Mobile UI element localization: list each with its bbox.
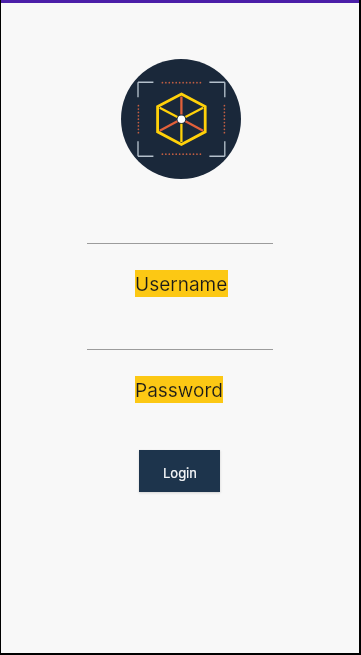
button[interactable]: Password — [135, 376, 223, 403]
staticText: Login — [163, 465, 197, 481]
button[interactable]: Username — [135, 270, 228, 297]
staticText: Password — [135, 379, 223, 402]
other: App logo — [121, 59, 241, 179]
staticText: Username — [135, 273, 228, 296]
button[interactable]: Login — [139, 450, 220, 492]
